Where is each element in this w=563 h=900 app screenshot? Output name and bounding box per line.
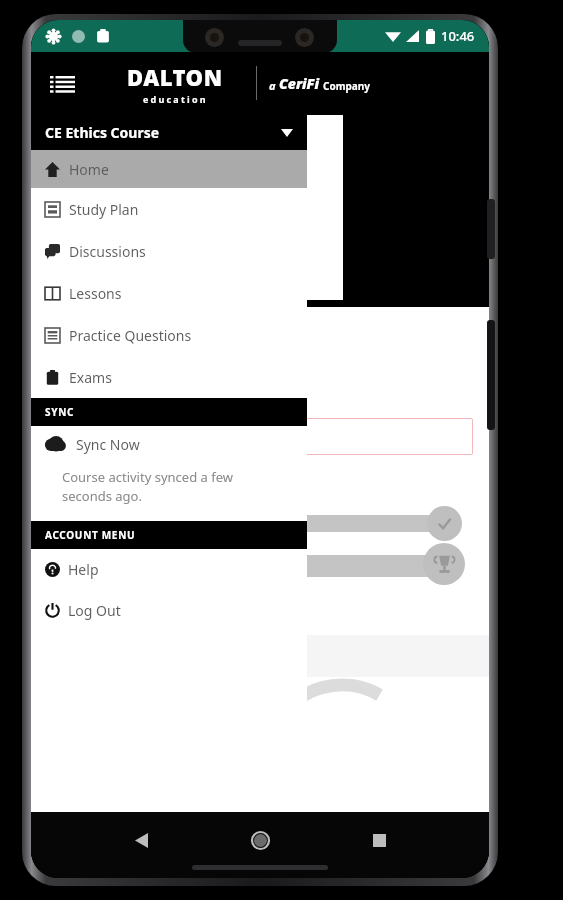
button[interactable]: Discussions (31, 230, 307, 272)
staticText: Company (323, 79, 370, 93)
button[interactable]: Study Plan (31, 188, 307, 230)
button[interactable]: Home (238, 818, 282, 862)
button[interactable]: Sync Now (31, 426, 307, 462)
button[interactable]: Recent apps (357, 818, 401, 862)
staticText: Home (69, 160, 109, 179)
button[interactable]: Log Out (31, 590, 307, 631)
staticText: DALTON (127, 62, 223, 92)
staticText: 10:46 (441, 27, 475, 45)
staticText: Practice Questions (69, 326, 192, 345)
staticText: Exams (69, 368, 112, 387)
staticText: CeriFi (279, 74, 323, 93)
staticText: Sync Now (76, 435, 140, 454)
staticText: CE Ethics Course (45, 123, 160, 142)
staticText: Discussions (69, 242, 146, 261)
button[interactable]: Help (31, 549, 307, 590)
staticText: Course activity synced a few seconds ago… (62, 468, 233, 505)
button[interactable]: Exams (31, 356, 307, 398)
button[interactable]: Practice Questions (31, 314, 307, 356)
button[interactable]: Lessons (31, 272, 307, 314)
staticText: Study Plan (69, 200, 139, 219)
staticText: SYNC (45, 405, 75, 419)
button[interactable]: Back (119, 818, 163, 862)
button[interactable]: Open navigation menu (43, 66, 81, 104)
staticText: Lessons (69, 284, 122, 303)
staticText: a (269, 78, 279, 93)
staticText: Log Out (68, 601, 121, 620)
button[interactable]: Home (31, 150, 307, 188)
staticText: Help (68, 560, 99, 579)
button[interactable]: CE Ethics Course (31, 115, 307, 150)
staticText: ACCOUNT MENU (45, 528, 136, 542)
staticText: education (143, 93, 208, 105)
